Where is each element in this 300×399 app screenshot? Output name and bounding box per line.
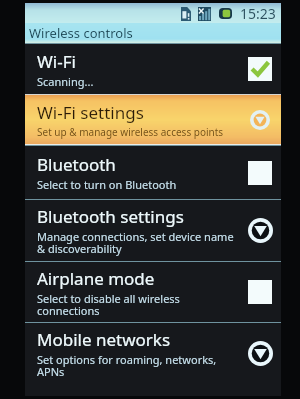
staticText: Scanning...	[37, 74, 94, 89]
staticText: Select to disable all wireless connectio…	[37, 291, 180, 318]
staticText: Wi-Fi settings	[37, 101, 144, 124]
staticText: Wireless controls	[29, 24, 133, 42]
staticText: Airplane mode	[37, 267, 155, 290]
staticText: Mobile networks	[37, 328, 171, 351]
button[interactable]: Bluetooth	[25, 146, 281, 199]
button[interactable]: Airplane mode	[25, 262, 281, 322]
other: Open settings	[248, 218, 273, 243]
other: Enabled	[248, 57, 272, 81]
other: Open settings	[250, 110, 270, 130]
staticText: 15:23	[240, 4, 276, 23]
staticText: Wi-Fi	[37, 50, 76, 73]
button[interactable]: Wi-Fi	[25, 44, 281, 94]
button[interactable]: Bluetooth settings	[25, 200, 281, 261]
staticText: Bluetooth settings	[37, 205, 184, 228]
staticText: Set options for roaming, networks, APNs	[37, 352, 217, 379]
staticText: Manage connections, set device name & di…	[37, 229, 234, 256]
staticText: Set up & manage wireless access points	[37, 125, 224, 139]
button[interactable]: Mobile networks	[25, 323, 281, 384]
staticText: Bluetooth	[37, 153, 116, 176]
staticText: Select to turn on Bluetooth	[37, 177, 177, 192]
button[interactable]: Wi-Fi settings	[25, 95, 281, 144]
other: Open settings	[248, 341, 273, 366]
